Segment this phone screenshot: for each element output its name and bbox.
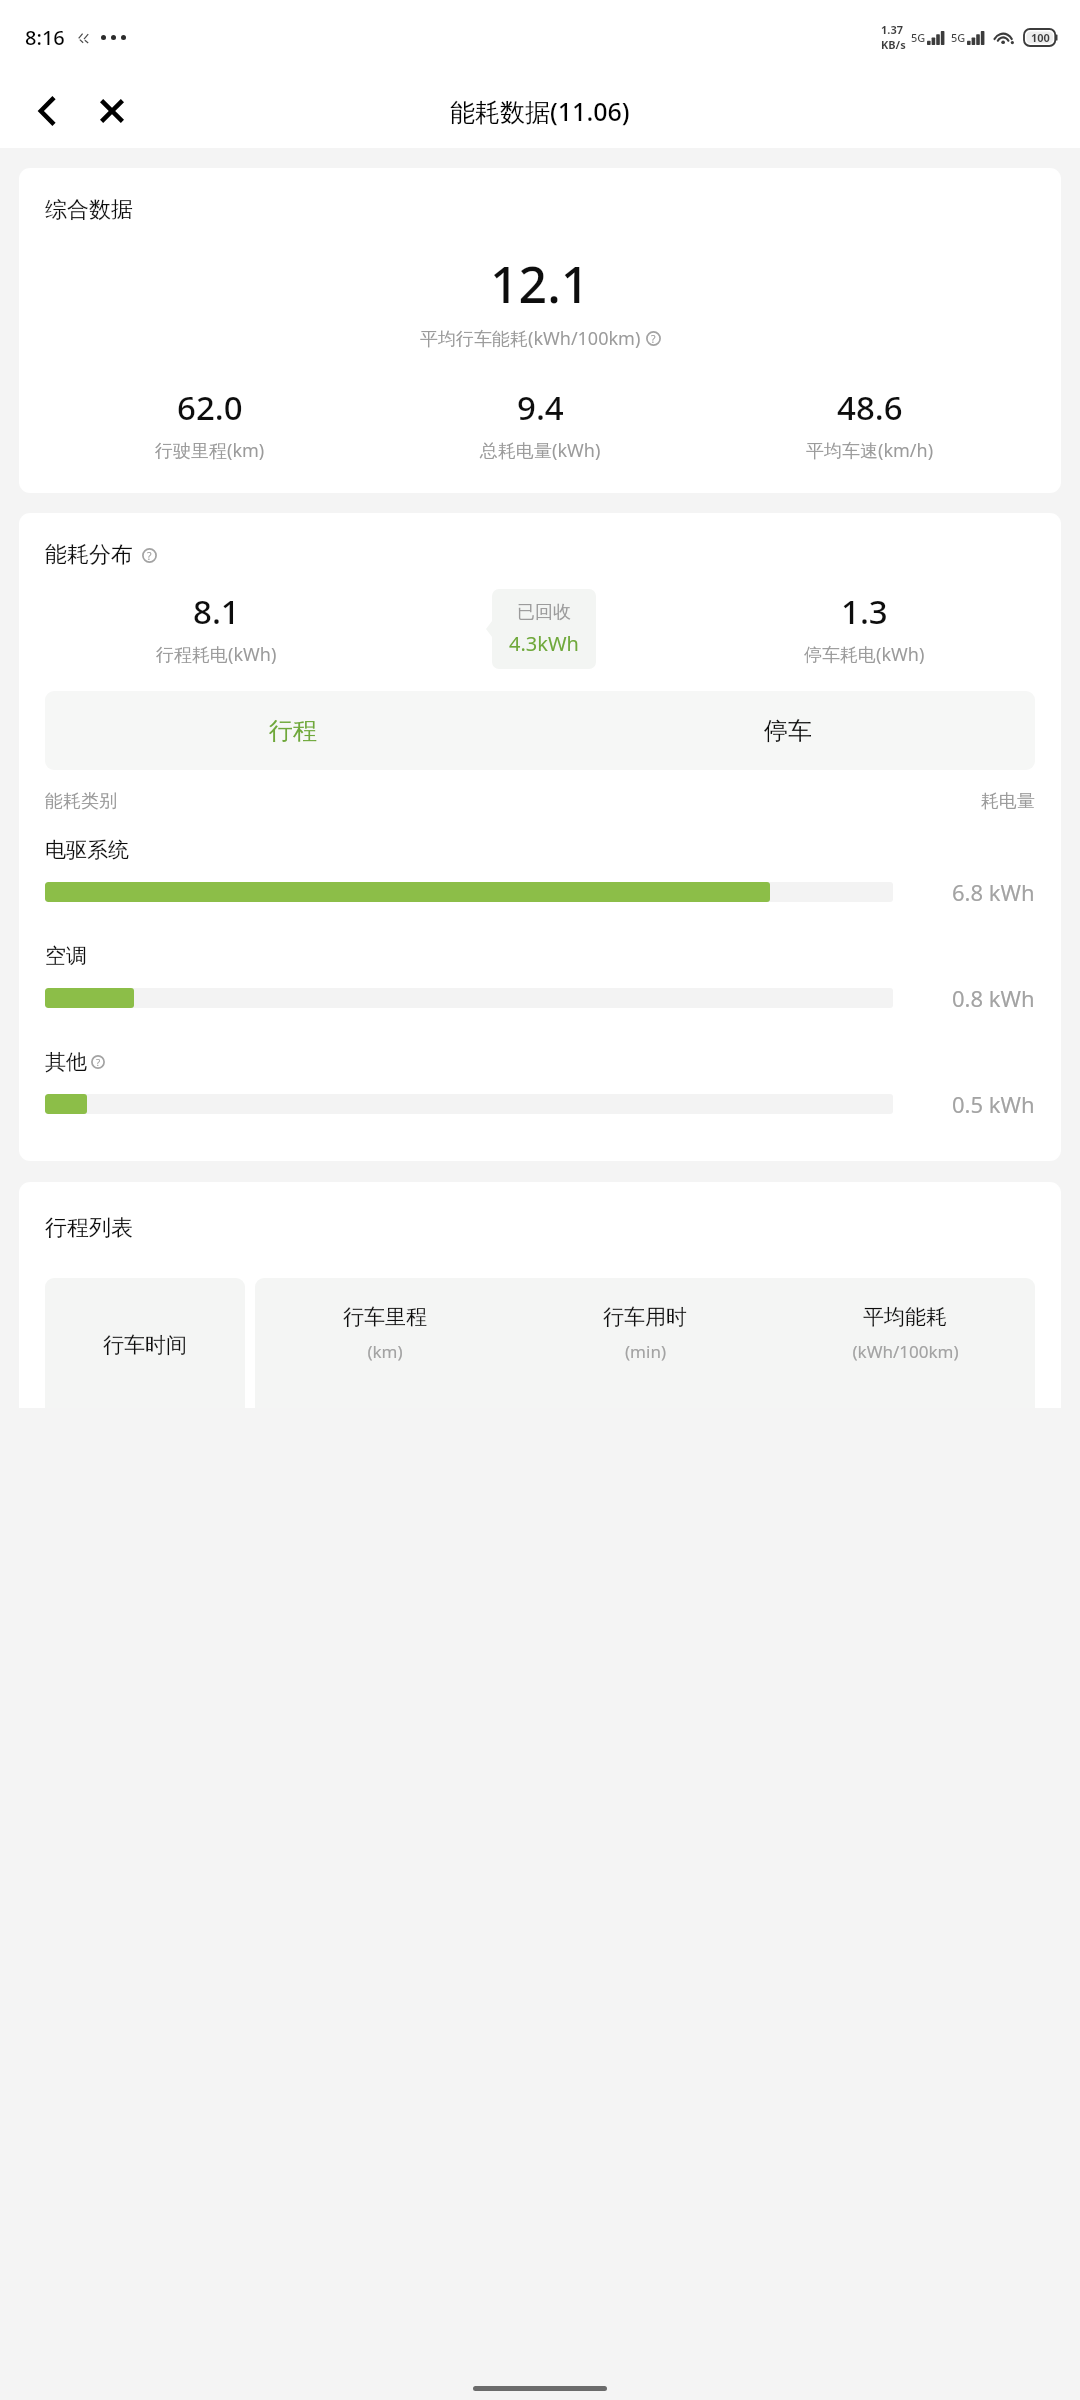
staticText: 行程耗电(kWh) (156, 642, 277, 667)
staticText: 停车 (764, 716, 812, 746)
button[interactable]: 停车 (540, 691, 1035, 770)
staticText: 能耗类别 (45, 790, 117, 813)
staticText: ? (651, 332, 656, 346)
staticText: 1.3 (841, 589, 888, 634)
button[interactable]: 行程 (45, 691, 540, 770)
staticText: 平均行车能耗(kWh/100km) (420, 326, 641, 351)
staticText: 行车时间 (103, 1332, 187, 1358)
staticText: 1.37 (881, 22, 903, 37)
staticText: 行驶里程(km) (155, 438, 265, 463)
staticText: 平均车速(km/h) (806, 438, 934, 463)
staticText: 能耗数据(11.06) (450, 94, 630, 128)
staticText: 4.3kWh (509, 630, 579, 657)
staticText: 8:16 (25, 24, 65, 51)
staticText: (kWh/100km) (852, 1340, 959, 1363)
staticText: 空调 (45, 943, 87, 969)
staticText: ? (96, 1056, 101, 1069)
button[interactable]: 行车里程 (255, 1278, 515, 1408)
staticText: 其他 (45, 1049, 87, 1075)
staticText: 平均能耗 (863, 1304, 947, 1330)
staticText: 5G (951, 30, 966, 45)
staticText: 行车用时 (603, 1304, 687, 1330)
button[interactable]: 行车用时 (515, 1278, 775, 1408)
staticText: 8.1 (193, 589, 240, 634)
staticText: 行车里程 (343, 1304, 427, 1330)
staticText: ? (147, 549, 152, 563)
staticText: 100 (1031, 30, 1050, 45)
staticText: 耗电量 (981, 790, 1035, 813)
staticText: 电驱系统 (45, 837, 129, 863)
staticText: 48.6 (837, 385, 903, 430)
button[interactable]: 行车时间 (45, 1278, 245, 1408)
staticText: 0.5 kWh (952, 1089, 1035, 1119)
staticText: 0.8 kWh (952, 983, 1035, 1013)
staticText: (min) (625, 1340, 666, 1363)
staticText: 9.4 (517, 385, 564, 430)
staticText: 能耗分布 (45, 541, 133, 569)
button[interactable]: Close (84, 83, 140, 139)
staticText: 已回收 (517, 601, 571, 624)
staticText: 62.0 (177, 385, 243, 430)
staticText: 5G (911, 30, 926, 45)
staticText: 综合数据 (45, 196, 133, 224)
staticText: 行程列表 (45, 1214, 133, 1242)
staticText: 总耗电量(kWh) (480, 438, 601, 463)
staticText: 6.8 kWh (952, 877, 1035, 907)
staticText: (km) (367, 1340, 403, 1363)
staticText: 行程 (269, 716, 317, 746)
button[interactable]: 平均能耗 (775, 1278, 1035, 1408)
staticText: 停车耗电(kWh) (804, 642, 925, 667)
staticText: KB/s (881, 37, 906, 52)
staticText: 12.1 (490, 250, 590, 318)
button[interactable]: Back (20, 83, 76, 139)
